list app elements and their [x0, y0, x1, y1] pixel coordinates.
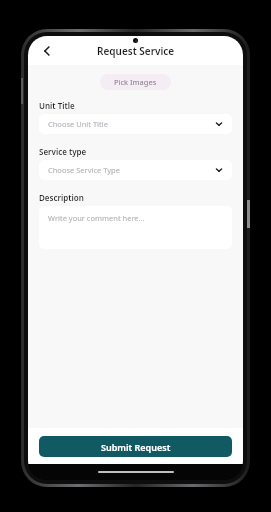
- staticText: Description: [39, 192, 84, 203]
- staticText: Submit Request: [101, 441, 171, 453]
- staticText: Choose Service Type: [48, 165, 120, 175]
- staticText: Service type: [39, 146, 87, 157]
- staticText: Choose Unit Title: [48, 119, 108, 129]
- staticText: Write your comment here...: [48, 213, 145, 223]
- button[interactable]: Back: [34, 38, 60, 64]
- button[interactable]: Submit Request: [39, 436, 232, 457]
- staticText: Request Service: [97, 44, 175, 58]
- button[interactable]: Choose Service Type: [39, 160, 232, 180]
- button[interactable]: Pick Images: [100, 74, 171, 90]
- staticText: Pick Images: [114, 77, 157, 87]
- button[interactable]: Write your comment here...: [39, 206, 232, 249]
- button[interactable]: Choose Unit Title: [39, 114, 232, 134]
- staticText: Unit Title: [39, 100, 75, 111]
